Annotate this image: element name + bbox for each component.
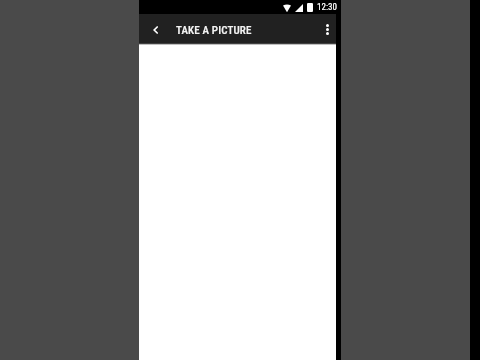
- button[interactable]: Navigate up: [139, 14, 170, 43]
- staticText: 12:30: [317, 2, 337, 13]
- staticText: TAKE A PICTURE: [176, 24, 252, 37]
- button[interactable]: More options: [319, 14, 336, 43]
